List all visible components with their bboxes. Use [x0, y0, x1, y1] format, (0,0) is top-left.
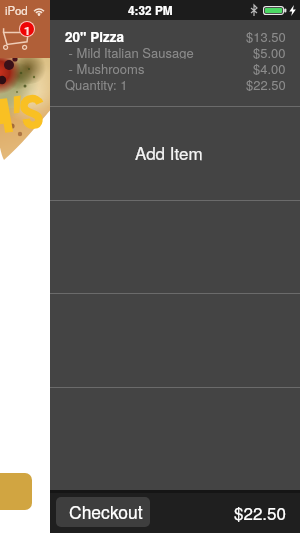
staticText: Add Item	[135, 140, 203, 164]
button[interactable]: Add Item	[50, 107, 300, 200]
staticText: 1	[24, 22, 31, 36]
staticText: $5.00	[253, 43, 286, 59]
staticText: 20" Pizza	[65, 27, 124, 43]
staticText: Quantity: 1	[65, 75, 128, 91]
staticText: $22.50	[234, 500, 286, 524]
button[interactable]: Checkout	[56, 497, 150, 527]
staticText: $22.50	[246, 75, 286, 91]
staticText: 4:32 PM	[128, 2, 173, 19]
staticText: - Mild Italian Sausage	[65, 43, 194, 59]
staticText: - Mushrooms	[65, 59, 145, 75]
staticText: iPod	[5, 2, 28, 18]
button[interactable]: Order	[0, 473, 32, 510]
staticText: $4.00	[253, 59, 286, 75]
staticText: Checkout	[69, 499, 143, 524]
button[interactable]: Cart	[0, 24, 36, 52]
staticText: $13.50	[246, 27, 286, 43]
button[interactable]: 20" Pizza	[50, 20, 300, 106]
